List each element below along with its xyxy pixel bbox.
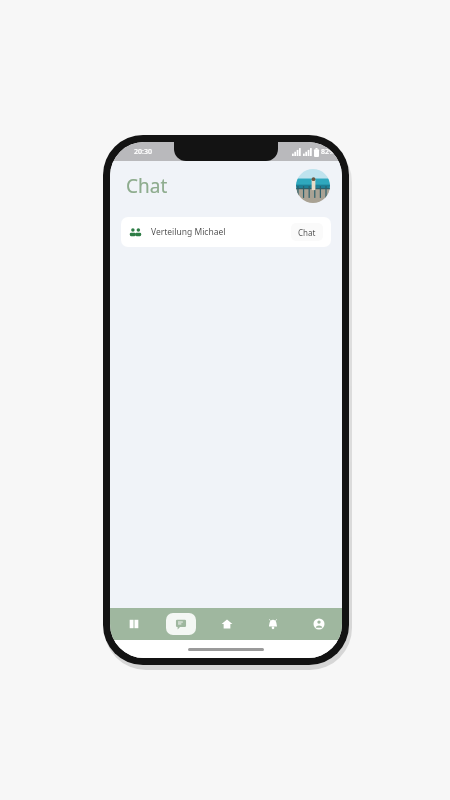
button[interactable]: Notifications <box>250 608 296 640</box>
button[interactable]: Chat <box>291 223 323 241</box>
button[interactable]: Account <box>296 608 342 640</box>
button[interactable]: Verteilung Michael <box>121 217 331 247</box>
staticText: Chat <box>126 173 168 199</box>
staticText: Verteilung Michael <box>151 226 226 238</box>
button[interactable]: Chat <box>157 608 204 640</box>
staticText: 20:30 <box>134 147 152 157</box>
button[interactable]: Profile <box>296 169 330 203</box>
staticText: Chat <box>298 227 316 238</box>
staticText: 82% <box>321 147 335 157</box>
button[interactable]: Directory <box>110 608 157 640</box>
button[interactable]: Home <box>204 608 250 640</box>
